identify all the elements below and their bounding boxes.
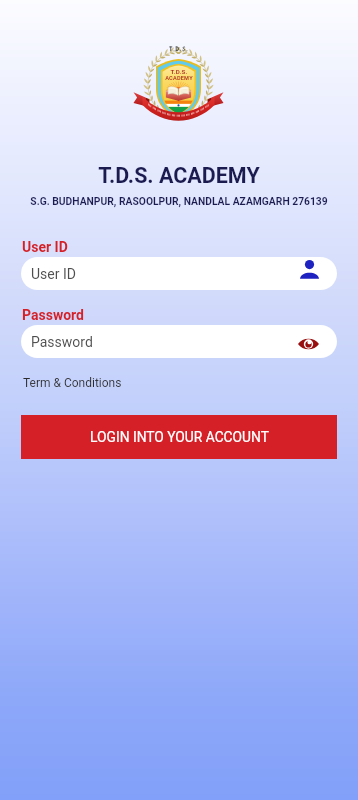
staticText: User ID	[31, 266, 76, 282]
staticText: Password	[31, 334, 93, 350]
other: User	[300, 260, 319, 279]
button[interactable]: Term & Conditions	[0, 375, 122, 391]
other: Show password	[298, 335, 319, 353]
staticText: Password	[22, 307, 84, 323]
staticText: ACADEMY	[129, 75, 229, 82]
button[interactable]: LOGIN INTO YOUR ACCOUNT	[21, 415, 337, 459]
button[interactable]: Password	[21, 325, 337, 358]
staticText: User ID	[22, 239, 68, 255]
staticText: LOGIN INTO YOUR ACCOUNT	[90, 429, 269, 445]
button[interactable]: User ID	[21, 257, 337, 290]
staticText: S.G. BUDHANPUR, RASOOLPUR, NANDLAL AZAMG…	[0, 195, 358, 207]
staticText: T.D.S. ACADEMY	[0, 163, 358, 188]
staticText: T.D.S.	[129, 68, 229, 75]
